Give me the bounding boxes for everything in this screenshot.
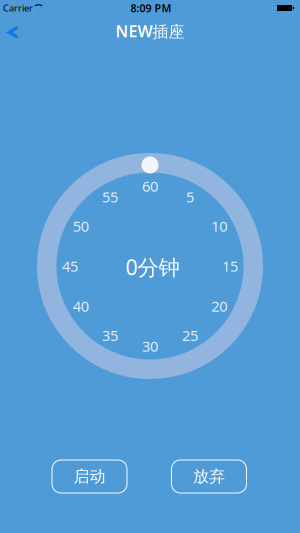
- staticText: 0分钟: [125, 253, 179, 281]
- staticText: 35: [102, 325, 118, 345]
- staticText: 55: [102, 187, 118, 206]
- staticText: 20: [211, 296, 227, 316]
- staticText: 放弃: [193, 467, 225, 486]
- staticText: 25: [182, 325, 198, 345]
- staticText: Carrier: [3, 2, 33, 14]
- button[interactable]: 启动: [52, 460, 127, 493]
- button[interactable]: 放弃: [171, 460, 246, 493]
- staticText: 60: [142, 176, 158, 196]
- staticText: 8:09 PM: [130, 1, 171, 15]
- staticText: NEW插座: [115, 20, 184, 42]
- staticText: 5: [186, 187, 194, 206]
- staticText: 45: [62, 256, 78, 276]
- staticText: 15: [222, 256, 238, 276]
- staticText: 50: [73, 216, 89, 236]
- staticText: 启动: [73, 467, 105, 486]
- staticText: 30: [142, 336, 158, 356]
- staticText: 10: [211, 216, 227, 236]
- button[interactable]: Back: [0, 16, 26, 49]
- staticText: 40: [73, 296, 89, 316]
